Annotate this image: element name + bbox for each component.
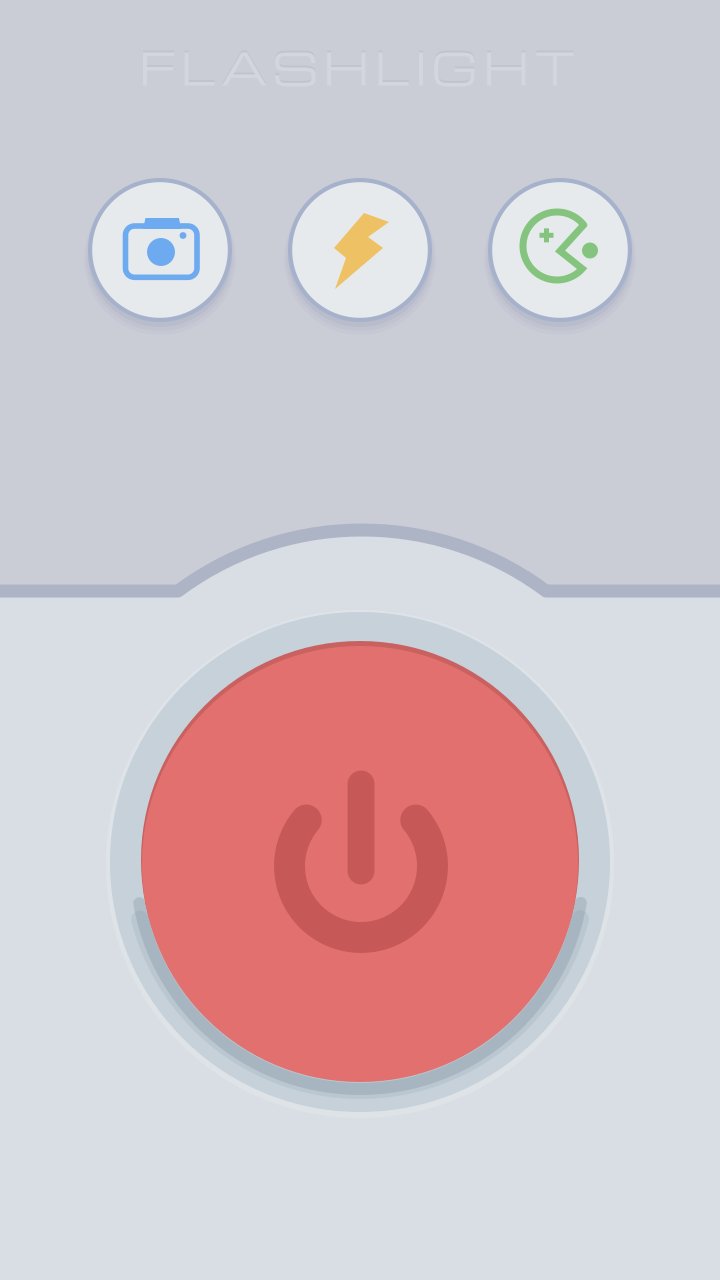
button[interactable]: Power — [0, 0, 720, 1280]
button[interactable]: Camera — [0, 0, 720, 1280]
button[interactable]: Flashlight — [0, 0, 720, 1280]
button[interactable]: Games — [0, 0, 720, 1280]
staticText: FLASHLIGHT — [139, 35, 575, 97]
staticText: FLASHLIGHT — [139, 33, 575, 95]
